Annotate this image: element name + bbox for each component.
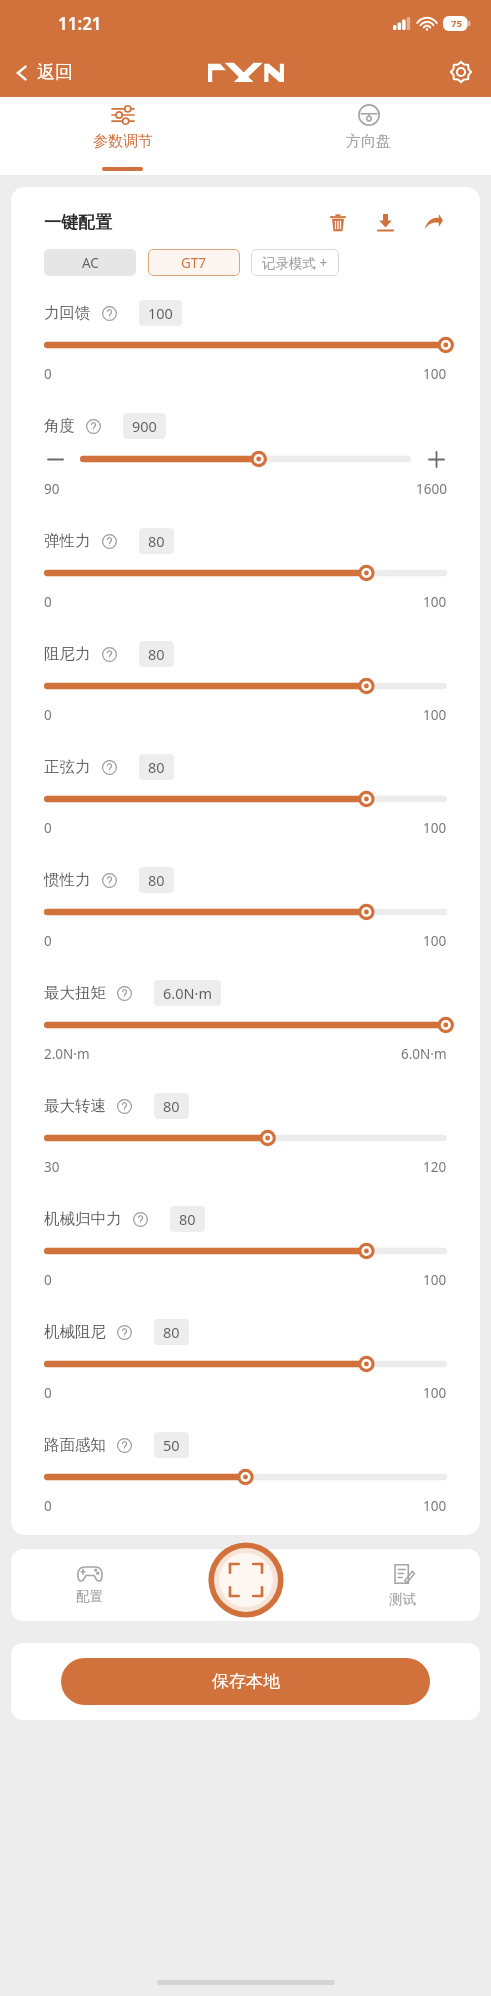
staticText: 120 <box>423 1158 447 1176</box>
button[interactable]: Scan <box>206 1540 286 1620</box>
button[interactable]: 保存本地 <box>61 1658 430 1705</box>
button[interactable] <box>44 676 447 696</box>
button[interactable] <box>44 902 447 922</box>
staticText: 0 <box>44 706 52 724</box>
staticText: 0 <box>44 1271 52 1289</box>
button[interactable] <box>44 1241 447 1261</box>
button[interactable]: Help <box>102 873 117 888</box>
staticText: 100 <box>423 593 447 611</box>
button[interactable] <box>80 449 411 469</box>
staticText: 测试 <box>389 1591 416 1608</box>
staticText: 6.0N·m <box>163 983 212 1003</box>
button[interactable]: Help <box>117 1325 132 1340</box>
staticText: 11:21 <box>58 12 102 35</box>
staticText: 记录模式 + <box>262 254 328 272</box>
button[interactable] <box>44 1128 447 1148</box>
button[interactable]: 参数调节 <box>0 97 245 175</box>
button[interactable]: Help <box>102 647 117 662</box>
button[interactable] <box>44 563 447 583</box>
staticText: 0 <box>44 593 52 611</box>
staticText: 80 <box>163 1096 180 1116</box>
button[interactable]: Help <box>86 419 101 434</box>
staticText: 900 <box>132 416 157 436</box>
staticText: 力回馈 <box>44 303 91 323</box>
button[interactable]: Share <box>420 209 447 236</box>
staticText: 最大扭矩 <box>44 983 106 1003</box>
button[interactable]: Help <box>102 306 117 321</box>
staticText: 配置 <box>76 1588 103 1605</box>
staticText: 机械阻尼 <box>44 1322 106 1342</box>
button[interactable]: Download <box>372 209 399 236</box>
button[interactable]: Delete <box>325 210 351 236</box>
staticText: 50 <box>163 1435 180 1455</box>
button[interactable]: 配置 <box>11 1549 168 1621</box>
staticText: 返回 <box>37 61 73 84</box>
staticText: 100 <box>423 1271 447 1289</box>
staticText: 1600 <box>416 480 447 498</box>
button[interactable] <box>44 335 447 355</box>
button[interactable]: Help <box>133 1212 148 1227</box>
staticText: 0 <box>44 1384 52 1402</box>
staticText: 80 <box>148 644 165 664</box>
staticText: 30 <box>44 1158 60 1176</box>
button[interactable]: Help <box>117 1099 132 1114</box>
staticText: 阻尼力 <box>44 644 91 664</box>
button[interactable]: 测试 <box>324 1549 480 1621</box>
staticText: 0 <box>44 365 52 383</box>
staticText: 100 <box>423 365 447 383</box>
button[interactable]: GT7 <box>148 249 240 276</box>
staticText: 80 <box>148 757 165 777</box>
button[interactable]: Help <box>102 760 117 775</box>
staticText: 机械归中力 <box>44 1209 122 1229</box>
staticText: 100 <box>148 303 173 323</box>
staticText: 保存本地 <box>212 1671 280 1692</box>
button[interactable] <box>44 789 447 809</box>
staticText: 方向盘 <box>346 132 391 151</box>
staticText: 80 <box>148 531 165 551</box>
staticText: 参数调节 <box>93 132 153 151</box>
staticText: 100 <box>423 932 447 950</box>
button[interactable]: 返回 <box>0 55 83 90</box>
staticText: 75 <box>451 17 462 30</box>
button[interactable] <box>44 1015 447 1035</box>
staticText: 正弦力 <box>44 757 91 777</box>
staticText: 100 <box>423 819 447 837</box>
staticText: 100 <box>423 1497 447 1515</box>
staticText: AC <box>82 254 99 272</box>
staticText: 2.0N·m <box>44 1045 90 1063</box>
staticText: GT7 <box>181 254 207 272</box>
staticText: 6.0N·m <box>401 1045 447 1063</box>
staticText: 80 <box>148 870 165 890</box>
staticText: 100 <box>423 1384 447 1402</box>
staticText: 最大转速 <box>44 1096 106 1116</box>
staticText: 0 <box>44 932 52 950</box>
button[interactable] <box>44 1467 447 1487</box>
staticText: 80 <box>179 1209 196 1229</box>
button[interactable]: Help <box>117 986 132 1001</box>
staticText: 0 <box>44 819 52 837</box>
staticText: 90 <box>44 480 60 498</box>
staticText: 惯性力 <box>44 870 91 890</box>
staticText: 100 <box>423 706 447 724</box>
staticText: 路面感知 <box>44 1435 106 1455</box>
button[interactable]: Settings <box>439 52 491 92</box>
staticText: 0 <box>44 1497 52 1515</box>
button[interactable]: AC <box>44 249 136 276</box>
button[interactable]: 记录模式 + <box>251 249 339 276</box>
button[interactable]: 方向盘 <box>245 97 491 175</box>
button[interactable] <box>44 1354 447 1374</box>
staticText: 角度 <box>44 416 75 436</box>
button[interactable]: Help <box>117 1438 132 1453</box>
button[interactable]: Increase <box>425 448 447 470</box>
staticText: 弹性力 <box>44 531 91 551</box>
button[interactable]: Decrease <box>44 448 66 470</box>
staticText: 一键配置 <box>44 212 112 233</box>
button[interactable]: Help <box>102 534 117 549</box>
staticText: 80 <box>163 1322 180 1342</box>
